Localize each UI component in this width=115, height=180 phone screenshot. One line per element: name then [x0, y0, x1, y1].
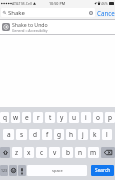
button[interactable]: Search — [91, 165, 114, 176]
staticText: AT&T M-Cell — [12, 1, 32, 6]
button[interactable]: Shift — [0, 147, 10, 158]
staticText: b — [66, 148, 70, 157]
staticText: j — [82, 130, 84, 139]
button[interactable]: q — [0, 112, 9, 123]
staticText: f — [46, 130, 49, 139]
staticText: space — [52, 168, 63, 173]
staticText: a — [7, 130, 11, 139]
button[interactable]: c — [36, 147, 47, 158]
staticText: z — [15, 148, 19, 157]
button[interactable]: Emoji — [9, 165, 17, 176]
button[interactable]: n — [75, 147, 86, 158]
staticText: w — [13, 113, 19, 122]
button[interactable]: i — [81, 112, 91, 123]
staticText: m — [90, 148, 97, 157]
staticText: d — [33, 130, 37, 139]
staticText: p — [108, 113, 112, 122]
staticText: x — [27, 148, 31, 157]
button[interactable]: Cancel — [97, 9, 115, 17]
button[interactable]: o — [93, 112, 103, 123]
button[interactable]: h — [66, 129, 76, 140]
staticText: Search — [95, 167, 111, 174]
staticText: i — [85, 113, 87, 122]
button[interactable]: y — [57, 112, 67, 123]
button[interactable]: b — [62, 147, 73, 158]
staticText: e — [25, 113, 29, 122]
staticText: 10:50 PM — [49, 1, 66, 6]
staticText: q — [3, 113, 7, 122]
staticText: 46% — [101, 1, 108, 6]
button[interactable]: r — [33, 112, 43, 123]
staticText: c — [40, 148, 44, 157]
button[interactable]: Shake to Undo — [0, 20, 115, 34]
staticText: u — [72, 113, 77, 122]
staticText: s — [20, 130, 24, 139]
button[interactable]: Dictate — [18, 165, 26, 176]
staticText: r — [37, 113, 40, 122]
staticText: General ›› Accessibility — [12, 28, 48, 33]
button[interactable]: t — [45, 112, 55, 123]
button[interactable]: x — [24, 147, 34, 158]
button[interactable]: 123 — [0, 165, 8, 176]
button[interactable]: l — [102, 129, 112, 140]
button[interactable]: j — [78, 129, 88, 140]
button[interactable]: f — [42, 129, 52, 140]
button[interactable]: a — [3, 129, 14, 140]
button[interactable]: k — [90, 129, 100, 140]
button[interactable]: z — [12, 147, 22, 158]
staticText: Cancel — [97, 9, 115, 17]
button[interactable]: Shake — [1, 8, 95, 17]
staticText: n — [78, 148, 83, 157]
staticText: h — [69, 130, 74, 139]
staticText: l — [106, 130, 108, 139]
button[interactable]: d — [29, 129, 40, 140]
staticText: Shake to Undo — [12, 21, 48, 28]
staticText: v — [53, 148, 57, 157]
staticText: g — [57, 130, 61, 139]
button[interactable]: v — [49, 147, 60, 158]
staticText: Shake — [8, 9, 25, 17]
button[interactable]: p — [105, 112, 115, 123]
button[interactable]: Backspace — [101, 147, 115, 158]
staticText: t — [49, 113, 52, 122]
button[interactable]: u — [69, 112, 79, 123]
button[interactable]: g — [54, 129, 64, 140]
button[interactable]: e — [22, 112, 31, 123]
staticText: y — [60, 113, 64, 122]
button[interactable]: w — [11, 112, 20, 123]
staticText: k — [93, 130, 97, 139]
button[interactable]: space — [27, 165, 87, 176]
staticText: 123 — [1, 168, 8, 173]
button[interactable]: s — [16, 129, 27, 140]
staticText: o — [96, 113, 100, 122]
button[interactable]: m — [88, 147, 99, 158]
